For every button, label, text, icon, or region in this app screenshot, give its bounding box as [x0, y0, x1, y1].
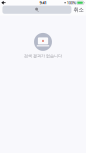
staticText: 9:41: [39, 0, 46, 5]
staticText: 취소: [74, 6, 84, 13]
button[interactable]: 취소: [74, 6, 84, 13]
button[interactable]: Search: [2, 6, 71, 14]
staticText: 검색 결과가 없습니다: [24, 53, 62, 58]
button[interactable]: Back: [0, 0, 6, 5]
staticText: 100%: [67, 0, 76, 5]
